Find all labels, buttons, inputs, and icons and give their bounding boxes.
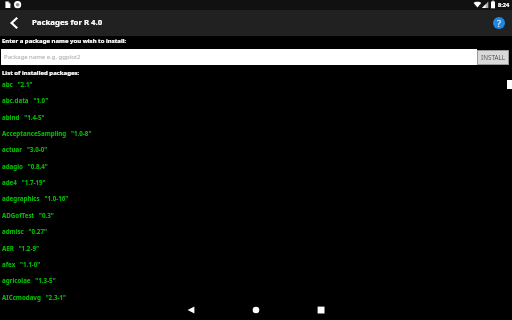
staticText: Enter a package name you wish to install…: [2, 37, 127, 45]
button[interactable]: AICcmodavg "2.3-1": [0, 293, 512, 309]
staticText: ade4 "1.7-19": [2, 178, 46, 186]
button[interactable]: adegraphics "1.0-16": [0, 194, 512, 210]
staticText: adagio "0.8.4": [2, 162, 48, 170]
staticText: abc.data "1.0": [2, 96, 49, 104]
staticText: Packages for R 4.0: [32, 17, 103, 28]
button[interactable]: Recent apps: [309, 298, 333, 320]
button[interactable]: Back: [179, 298, 203, 320]
button[interactable]: afex "1.1-0": [0, 260, 512, 276]
staticText: admisc "0.27": [2, 227, 47, 235]
staticText: afex "1.1-0": [2, 260, 41, 268]
staticText: ADGofTest "0.3": [2, 211, 54, 219]
staticText: adegraphics "1.0-16": [2, 194, 69, 202]
button[interactable]: actuar "3.0-0": [0, 145, 512, 161]
button[interactable]: ade4 "1.7-19": [0, 178, 512, 194]
button[interactable]: adagio "0.8.4": [0, 162, 512, 178]
button[interactable]: agricolae "1.3-5": [0, 276, 512, 292]
button[interactable]: abc "2.1": [0, 80, 512, 96]
button[interactable]: abc.data "1.0": [0, 96, 512, 112]
staticText: AICcmodavg "2.3-1": [2, 293, 66, 301]
button[interactable]: Package name e.g. ggplot2: [1, 49, 477, 65]
staticText: Package name e.g. ggplot2: [4, 53, 81, 61]
button[interactable]: ADGofTest "0.3": [0, 211, 512, 227]
staticText: abind "1.4-5": [2, 113, 45, 121]
button[interactable]: AcceptanceSampling "1.0-8": [0, 129, 512, 145]
staticText: INSTALL: [481, 53, 506, 62]
button[interactable]: admisc "0.27": [0, 227, 512, 243]
staticText: agricolae "1.3-5": [2, 276, 56, 284]
button[interactable]: INSTALL: [477, 50, 509, 65]
staticText: ?: [497, 17, 501, 29]
staticText: List of installed packages:: [2, 69, 80, 77]
button[interactable]: Help: [493, 17, 505, 29]
staticText: actuar "3.0-0": [2, 145, 48, 153]
button[interactable]: AER "1.2-9": [0, 244, 512, 260]
button[interactable]: Home: [244, 298, 268, 320]
button[interactable]: abind "1.4-5": [0, 113, 512, 129]
staticText: abc "2.1": [2, 80, 33, 88]
staticText: 8:24: [498, 1, 510, 9]
staticText: AER "1.2-9": [2, 244, 39, 252]
button[interactable]: Navigate up: [0, 10, 26, 36]
staticText: AcceptanceSampling "1.0-8": [2, 129, 92, 137]
